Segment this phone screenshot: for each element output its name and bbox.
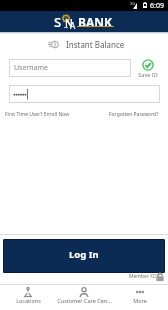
- button[interactable]: More: [112, 285, 168, 304]
- staticText: Locations: [16, 297, 41, 304]
- button[interactable]: Forgotten Password?: [109, 111, 159, 118]
- other: S NA BANK: [0, 11, 168, 32]
- staticText: 6:09: [150, 1, 164, 11]
- staticText: Customer Care Cen...: [57, 297, 112, 304]
- staticText: Member FDIC: [129, 273, 162, 280]
- button[interactable]: Customer Care Cen...: [56, 285, 112, 304]
- staticText: BANK: [78, 14, 113, 30]
- button[interactable]: Locations: [0, 285, 56, 304]
- button[interactable]: Save ID: [134, 59, 161, 78]
- staticText: Save ID: [138, 71, 158, 78]
- staticText: S: [54, 13, 62, 31]
- staticText: 3G: [130, 1, 136, 6]
- button[interactable]: Username: [9, 59, 131, 77]
- staticText: More: [133, 297, 147, 304]
- button[interactable]: [9, 85, 160, 103]
- staticText: A: [70, 20, 76, 31]
- staticText: Log In: [69, 248, 99, 261]
- staticText: N: [65, 16, 73, 30]
- staticText: Instant Balance: [66, 39, 125, 50]
- button[interactable]: Instant Balance: [45, 38, 125, 52]
- staticText: Username: [14, 63, 49, 73]
- button[interactable]: Log In: [3, 239, 165, 273]
- button[interactable]: First Time User? Enroll Now: [5, 111, 70, 118]
